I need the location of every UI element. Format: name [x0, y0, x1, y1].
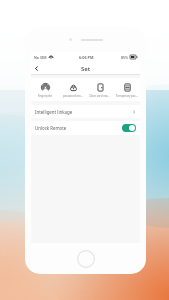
button[interactable]: Door card ma...: [86, 82, 113, 98]
staticText: 85%: [121, 55, 129, 60]
staticText: Temporary pas...: [116, 94, 138, 98]
button[interactable]: password mo...: [59, 82, 86, 98]
staticText: 6:06 PM: [79, 55, 94, 60]
button[interactable]: Unlock Remote toggle, on: [122, 124, 136, 132]
staticText: Door card ma...: [89, 94, 110, 98]
staticText: Set: [81, 65, 91, 73]
button[interactable]: Unlock Remote: [31, 121, 140, 135]
staticText: No SIM: [34, 55, 47, 60]
staticText: Fingerprint manage...: [32, 94, 58, 98]
button[interactable]: Temporary pas...: [113, 82, 140, 98]
staticText: password mo...: [63, 94, 83, 98]
button[interactable]: Fingerprint manage...: [31, 82, 59, 98]
button[interactable]: Back: [31, 63, 42, 74]
staticText: Unlock Remote: [35, 125, 67, 131]
staticText: Intelligent linkage: [35, 109, 73, 115]
button[interactable]: Intelligent linkage: [31, 105, 140, 118]
